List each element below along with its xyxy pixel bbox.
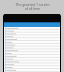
button[interactable] xyxy=(4,51,60,54)
button[interactable] xyxy=(4,63,60,66)
button[interactable] xyxy=(4,69,60,72)
button[interactable] xyxy=(4,27,60,30)
button[interactable] xyxy=(4,66,60,69)
button[interactable] xyxy=(4,33,60,36)
button[interactable] xyxy=(4,39,60,42)
button[interactable] xyxy=(4,48,60,51)
staticText: The greatest 1 screen xyxy=(15,2,50,7)
button[interactable] xyxy=(4,54,60,57)
button[interactable] xyxy=(4,57,60,60)
button[interactable] xyxy=(4,30,60,33)
button[interactable] xyxy=(4,45,60,48)
staticText: of all time xyxy=(25,7,40,11)
button[interactable] xyxy=(4,36,60,39)
button[interactable] xyxy=(4,60,60,63)
button[interactable] xyxy=(4,42,60,45)
